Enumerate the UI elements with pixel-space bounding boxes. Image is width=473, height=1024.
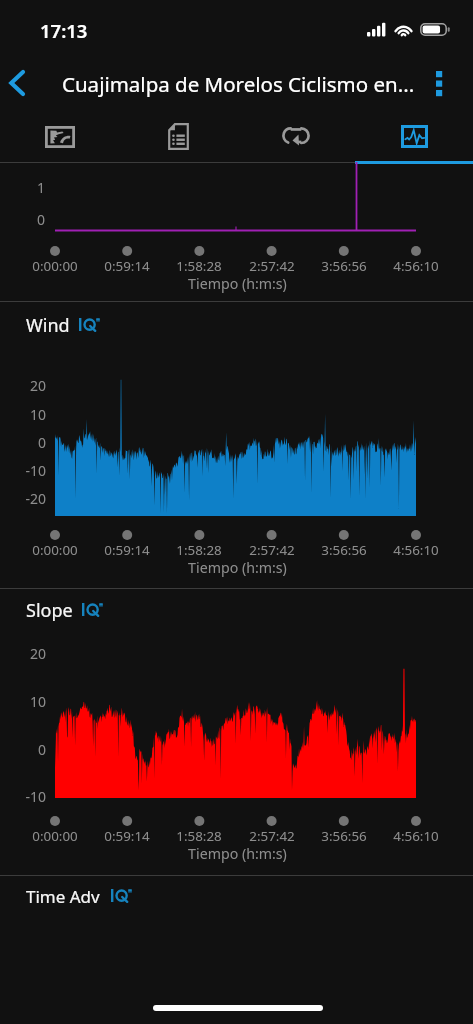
staticText: 0:00:00 xyxy=(15,541,95,559)
staticText: 3:56:56 xyxy=(304,541,384,559)
staticText: 2:57:42 xyxy=(232,541,312,559)
staticText: Time Adv xyxy=(26,885,100,908)
button[interactable]: Back xyxy=(0,57,46,111)
staticText: 4:56:10 xyxy=(376,541,456,559)
staticText: 0:59:14 xyxy=(87,257,167,275)
staticText: 4:56:10 xyxy=(376,257,456,275)
staticText: 20 xyxy=(6,644,46,663)
staticText: 20 xyxy=(6,376,46,395)
staticText: 17:13 xyxy=(40,18,88,43)
staticText: 10 xyxy=(6,692,46,711)
button[interactable]: Map xyxy=(0,111,119,164)
staticText: Slope xyxy=(26,598,73,623)
staticText: Tiempo (h:m:s) xyxy=(1,844,473,863)
staticText: 0:00:00 xyxy=(15,827,95,845)
staticText: 1 xyxy=(5,178,45,197)
staticText: 3:56:56 xyxy=(304,257,384,275)
staticText: -20 xyxy=(6,489,46,508)
staticText: -10 xyxy=(6,461,46,480)
staticText: 10 xyxy=(6,405,46,424)
staticText: 0 xyxy=(5,210,45,229)
staticText: Wind xyxy=(26,313,70,338)
button[interactable]: Laps xyxy=(237,111,355,164)
staticText: 1:58:28 xyxy=(159,541,239,559)
staticText: 0:59:14 xyxy=(87,827,167,845)
button[interactable]: Charts xyxy=(355,111,473,164)
staticText: 2:57:42 xyxy=(232,827,312,845)
staticText: 4:56:10 xyxy=(376,827,456,845)
staticText: 1:58:28 xyxy=(159,827,239,845)
staticText: Cuajimalpa de Morelos Ciclismo en... xyxy=(62,70,415,98)
staticText: Tiempo (h:m:s) xyxy=(1,558,473,577)
staticText: -10 xyxy=(6,787,46,806)
staticText: 0 xyxy=(6,740,46,759)
staticText: 0 xyxy=(6,433,46,452)
button[interactable]: Details xyxy=(119,111,237,164)
button[interactable]: More options xyxy=(425,57,469,111)
staticText: 2:57:42 xyxy=(232,257,312,275)
staticText: 1:58:28 xyxy=(159,257,239,275)
staticText: Tiempo (h:m:s) xyxy=(1,274,473,293)
staticText: 0:00:00 xyxy=(15,257,95,275)
staticText: 0:59:14 xyxy=(87,541,167,559)
staticText: 3:56:56 xyxy=(304,827,384,845)
